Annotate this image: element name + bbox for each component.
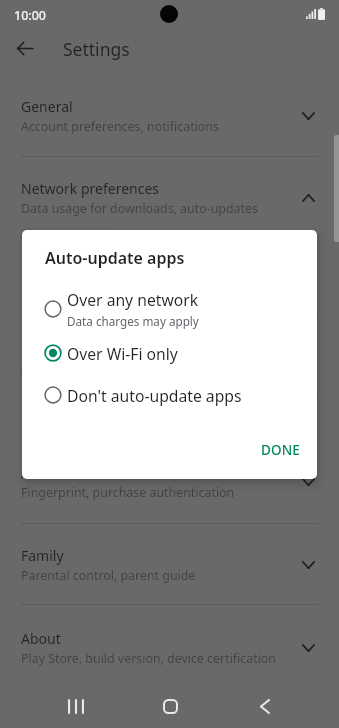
button[interactable]: Authentication xyxy=(0,454,339,522)
staticText: Over Wi-Fi only xyxy=(67,343,178,364)
staticText: Data charges may apply xyxy=(67,313,199,329)
button[interactable]: Family xyxy=(0,537,339,605)
staticText: Family xyxy=(21,546,64,565)
staticText: General xyxy=(21,97,73,116)
button[interactable]: Notifications xyxy=(0,332,339,400)
staticText: Fingerprint, purchase authentication xyxy=(21,484,235,501)
staticText: 10:00 xyxy=(14,7,47,24)
staticText: About xyxy=(21,629,61,648)
staticText: Settings xyxy=(63,37,130,61)
staticText: Data usage for downloads, auto-updates xyxy=(21,200,258,217)
button[interactable]: About xyxy=(0,620,339,688)
staticText: App updates, offers and promotions xyxy=(21,362,232,379)
button[interactable] xyxy=(22,288,317,332)
staticText: Over any network xyxy=(67,289,199,310)
staticText: Account preferences, notifications xyxy=(21,118,219,135)
button[interactable] xyxy=(22,374,317,412)
staticText: Parental control, parent guide xyxy=(21,567,196,584)
button[interactable]: Network preferences xyxy=(0,170,339,238)
staticText: Network preferences xyxy=(21,179,160,198)
staticText: Auto-update apps xyxy=(45,247,185,269)
button[interactable]: Recent apps xyxy=(52,682,100,728)
staticText: Authentication xyxy=(21,463,118,482)
staticText: Payment methods, Play Protect certificat… xyxy=(21,281,276,298)
staticText: Purchases xyxy=(21,260,89,279)
button[interactable]: DONE xyxy=(252,434,309,466)
staticText: Don't auto-update apps xyxy=(67,385,242,406)
staticText: Play Store, build version, device certif… xyxy=(21,650,277,667)
button[interactable]: Purchases xyxy=(0,251,339,319)
button[interactable]: Home xyxy=(146,682,194,728)
button[interactable]: Back xyxy=(241,682,289,728)
button[interactable] xyxy=(22,332,317,370)
button[interactable]: General xyxy=(0,88,339,156)
staticText: Notifications xyxy=(21,341,105,360)
staticText: DONE xyxy=(261,441,300,459)
button[interactable]: Back xyxy=(9,32,41,64)
